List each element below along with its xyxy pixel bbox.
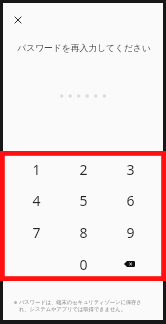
- staticText: 7: [32, 223, 41, 242]
- staticText: 3: [126, 160, 135, 179]
- button[interactable]: 削除: [107, 248, 154, 280]
- button[interactable]: 4: [13, 185, 60, 216]
- button[interactable]: 7: [13, 216, 60, 248]
- staticText: 2: [79, 160, 88, 179]
- staticText: 0: [79, 255, 88, 274]
- staticText: 1: [32, 160, 41, 179]
- button[interactable]: 閉じる: [5, 7, 30, 32]
- button[interactable]: 3: [107, 154, 154, 185]
- staticText: 9: [126, 223, 135, 242]
- button[interactable]: [13, 248, 60, 280]
- button[interactable]: 0: [60, 248, 107, 280]
- button[interactable]: 8: [60, 216, 107, 248]
- other: 削除: [124, 261, 135, 267]
- staticText: パスワードを再入力してください: [17, 43, 151, 54]
- staticText: 4: [32, 191, 41, 210]
- button[interactable]: 6: [107, 185, 154, 216]
- staticText: 5: [79, 191, 88, 210]
- staticText: 8: [79, 223, 88, 242]
- staticText: 6: [126, 191, 135, 210]
- staticText: パスワードは、端末のセキュリティゾーンに保存され、システムやアプリでは取得できま…: [19, 299, 146, 312]
- button[interactable]: 5: [60, 185, 107, 216]
- button[interactable]: 2: [60, 154, 107, 185]
- button[interactable]: 1: [13, 154, 60, 185]
- button[interactable]: 9: [107, 216, 154, 248]
